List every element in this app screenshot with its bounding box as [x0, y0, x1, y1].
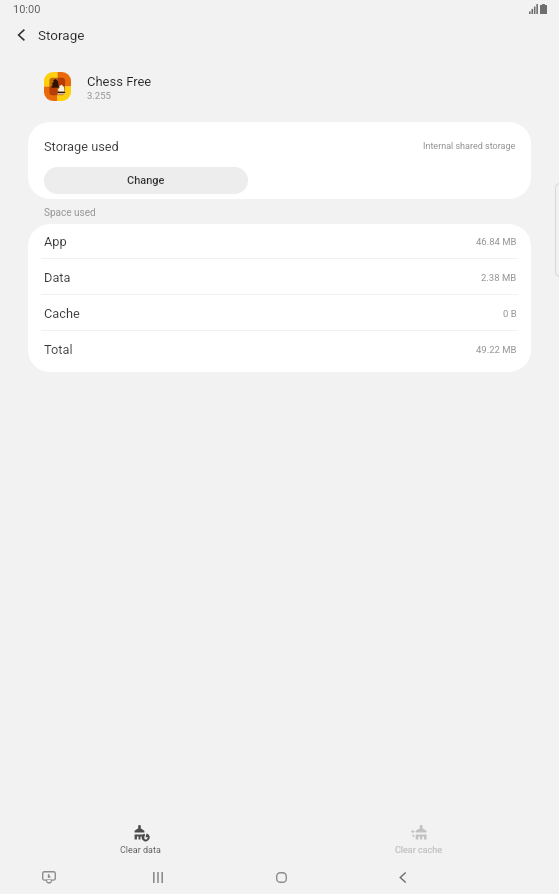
staticText: Clear data — [120, 845, 161, 856]
staticText: Clear cache — [395, 845, 443, 856]
button[interactable]: Recent apps — [138, 862, 178, 892]
button[interactable]: Data — [28, 259, 531, 295]
staticText: Chess Free — [87, 74, 152, 89]
staticText: 0 B — [503, 308, 517, 319]
staticText: Internal shared storage — [423, 141, 516, 152]
staticText: Total — [44, 342, 73, 357]
staticText: 3.255 — [87, 90, 111, 101]
staticText: Space used — [44, 207, 96, 219]
staticText: Storage used — [44, 139, 119, 154]
staticText: Storage — [38, 27, 85, 43]
staticText: 10:00 — [13, 3, 41, 16]
button[interactable]: Clear data — [100, 818, 180, 860]
staticText: 49.22 MB — [476, 344, 517, 355]
staticText: 2.38 MB — [481, 272, 517, 283]
button[interactable]: Hide keyboard — [29, 862, 69, 892]
button[interactable]: Change — [44, 167, 248, 194]
staticText: Cache — [44, 306, 80, 321]
button[interactable]: App — [28, 224, 531, 258]
button[interactable]: Total — [28, 331, 531, 367]
staticText: App — [44, 234, 67, 249]
button[interactable]: Home — [261, 862, 301, 892]
staticText: 46.84 MB — [476, 236, 517, 247]
staticText: Data — [44, 270, 71, 285]
staticText: Change — [127, 174, 165, 187]
button[interactable]: Navigate up — [7, 21, 35, 49]
button[interactable]: Cache — [28, 295, 531, 331]
button[interactable]: Clear cache — [379, 818, 459, 860]
button[interactable]: Back — [383, 862, 423, 892]
